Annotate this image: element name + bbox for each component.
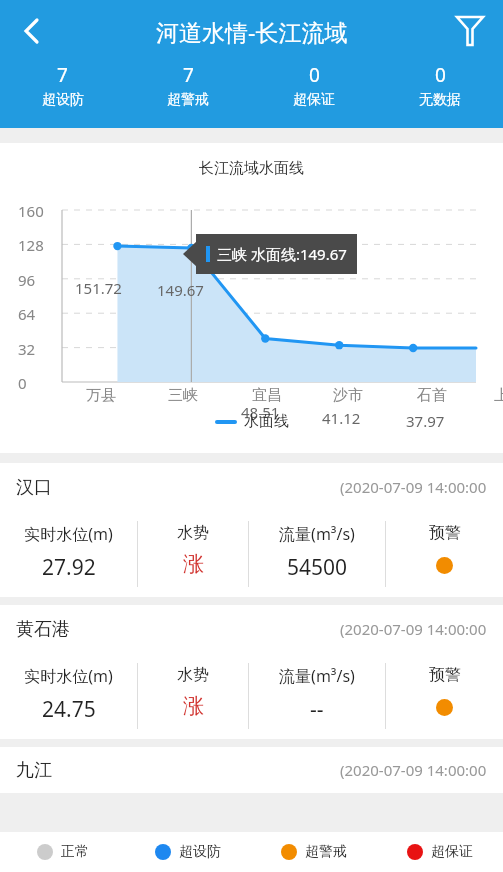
staticText: 149.67 [157, 280, 204, 300]
button[interactable]: 超保证 [377, 843, 503, 861]
staticText: 流量(m³/s) [279, 523, 355, 545]
button[interactable]: 超设防 [125, 843, 251, 861]
button[interactable]: 汉口 [0, 463, 503, 597]
staticText: 128 [18, 235, 44, 255]
staticText: 水面线 [244, 412, 289, 431]
button[interactable]: Filter [447, 8, 493, 54]
button[interactable]: Back [8, 8, 54, 54]
staticText: 宜昌 [252, 386, 282, 405]
staticText: 0 [18, 373, 27, 393]
staticText: (2020-07-09 14:00:00 [340, 477, 487, 497]
staticText: 涨 [183, 693, 204, 719]
staticText: 24.75 [42, 695, 96, 724]
staticText: 九江 [16, 759, 52, 782]
button[interactable]: 黄石港 [0, 605, 503, 739]
staticText: 三峡 [168, 386, 198, 405]
staticText: 涨 [183, 551, 204, 577]
button[interactable]: 超警戒 [251, 843, 377, 861]
staticText: 石首 [417, 386, 447, 405]
staticText: 41.12 [322, 408, 361, 428]
staticText: 黄石港 [16, 618, 70, 641]
staticText: 54500 [287, 553, 348, 582]
staticText: (2020-07-09 14:00:00 [340, 760, 487, 780]
staticText: 超警戒 [167, 91, 209, 109]
staticText: 预警 [429, 665, 461, 685]
staticText: 三峡 水面线:149.67 [217, 244, 347, 264]
button[interactable]: 0 [377, 62, 503, 109]
staticText: 超保证 [293, 91, 335, 109]
staticText: 32 [18, 339, 36, 359]
staticText: 96 [18, 270, 36, 290]
staticText: 超警戒 [305, 843, 347, 861]
staticText: 151.72 [75, 278, 122, 298]
staticText: 水势 [177, 665, 209, 685]
staticText: 实时水位(m) [24, 665, 113, 687]
staticText: 预警 [429, 523, 461, 543]
button[interactable]: 九江 [0, 747, 503, 793]
button[interactable]: 7 [125, 62, 251, 109]
staticText: 汉口 [16, 476, 52, 499]
staticText: 超设防 [179, 843, 221, 861]
staticText: 实时水位(m) [24, 523, 113, 545]
staticText: 河道水情-长江流域 [156, 16, 348, 47]
staticText: 64 [18, 304, 36, 324]
staticText: 160 [18, 201, 44, 221]
staticText: 0 [435, 62, 446, 88]
staticText: 37.97 [406, 411, 445, 431]
button[interactable]: 7 [0, 62, 125, 109]
staticText: -- [310, 695, 324, 724]
staticText: 超设防 [42, 91, 84, 109]
staticText: 万县 [86, 386, 116, 405]
staticText: 超保证 [431, 843, 473, 861]
staticText: 无数据 [419, 91, 461, 109]
staticText: 流量(m³/s) [279, 665, 355, 687]
staticText: 水势 [177, 523, 209, 543]
button[interactable]: 0 [251, 62, 377, 109]
staticText: 7 [183, 62, 194, 88]
staticText: (2020-07-09 14:00:00 [340, 619, 487, 639]
button[interactable]: 正常 [0, 843, 125, 861]
staticText: 0 [309, 62, 320, 88]
staticText: 沙市 [333, 386, 363, 405]
staticText: 上 [494, 386, 503, 405]
staticText: 48.51 [241, 402, 280, 422]
staticText: 7 [57, 62, 68, 88]
staticText: 27.92 [42, 553, 96, 582]
staticText: 正常 [61, 843, 89, 861]
staticText: 长江流域水面线 [199, 159, 304, 178]
